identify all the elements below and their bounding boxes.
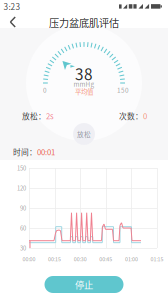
staticText: 2s xyxy=(46,110,54,122)
staticText: 30 xyxy=(20,244,26,252)
staticText: mmHg xyxy=(73,79,94,89)
staticText: 01:00 xyxy=(125,255,138,263)
staticText: 停止 xyxy=(75,278,93,291)
button[interactable]: 停止 xyxy=(44,276,123,293)
button[interactable]: Back xyxy=(0,10,26,34)
staticText: 00:45 xyxy=(99,255,112,263)
staticText: 60 xyxy=(20,224,26,232)
staticText: 38 xyxy=(75,62,93,85)
staticText: 00:30 xyxy=(74,255,87,263)
staticText: 次数： xyxy=(119,110,143,122)
staticText: 01:15 xyxy=(150,255,163,263)
staticText: 90 xyxy=(20,204,26,212)
staticText: 时间： xyxy=(13,146,37,158)
staticText: 150 xyxy=(17,164,26,172)
staticText: 00:15 xyxy=(48,255,61,263)
staticText: 00:01 xyxy=(37,146,55,158)
staticText: 00:00 xyxy=(22,255,35,263)
staticText: 放松 xyxy=(77,129,91,139)
staticText: 压力盆底肌评估 xyxy=(49,15,119,30)
staticText: 150 xyxy=(117,85,129,95)
button[interactable]: 放松 xyxy=(73,123,95,145)
staticText: 放松： xyxy=(22,110,46,122)
staticText: 3:23 xyxy=(3,0,20,12)
staticText: 0 xyxy=(43,85,47,95)
staticText: 0 xyxy=(143,110,147,122)
staticText: 平均值 xyxy=(75,87,93,96)
staticText: 120 xyxy=(17,184,26,192)
